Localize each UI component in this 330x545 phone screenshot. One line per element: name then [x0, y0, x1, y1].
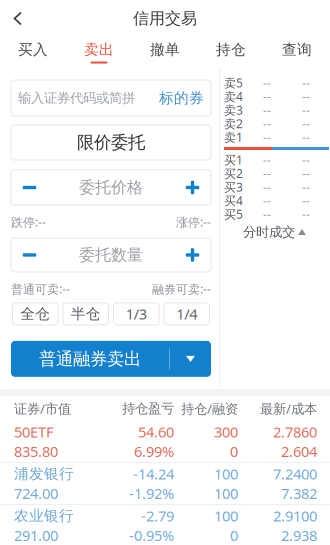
staticText: 标的券 [159, 89, 204, 107]
staticText: -- [263, 75, 271, 91]
button[interactable]: 1/4 [164, 303, 209, 325]
staticText: -- [302, 75, 310, 91]
staticText: -2.79 [141, 506, 174, 525]
staticText: 2.604 [281, 441, 317, 461]
staticText: 100 [214, 483, 238, 503]
staticText: 委托价格 [79, 178, 143, 197]
staticText: -14.24 [133, 464, 174, 483]
staticText: -- [302, 179, 310, 195]
button[interactable]: Back [0, 1, 36, 35]
staticText: 买入 [18, 40, 48, 58]
button[interactable]: 限价委托 [11, 125, 211, 160]
staticText: 54.60 [138, 422, 174, 441]
staticText: 跌停:-- [11, 214, 46, 230]
staticText: -- [263, 116, 271, 131]
button[interactable]: 1/3 [113, 303, 159, 325]
staticText: 涨停:-- [176, 214, 211, 230]
staticText: -- [263, 88, 271, 104]
staticText: 普通可卖:-- [11, 281, 70, 297]
staticText: 限价委托 [77, 132, 145, 153]
staticText: 查询 [282, 40, 312, 58]
staticText: -- [302, 102, 310, 118]
staticText: 买2 [224, 165, 243, 181]
staticText: 1/3 [126, 304, 147, 324]
staticText: 买5 [224, 206, 243, 222]
staticText: 买4 [224, 193, 243, 208]
staticText: 0 [230, 441, 238, 461]
staticText: -- [302, 88, 310, 104]
button[interactable]: 撤单 [132, 37, 198, 67]
staticText: 普通融券卖出 [39, 348, 141, 369]
staticText: 融券可卖:-- [152, 281, 211, 297]
staticText: 6.99% [134, 441, 174, 461]
staticText: 2.9100 [273, 506, 317, 525]
staticText: -- [302, 165, 310, 181]
staticText: -- [302, 129, 310, 145]
staticText: 撤单 [150, 40, 180, 58]
staticText: 724.00 [14, 483, 58, 503]
button[interactable]: 50ETF [0, 421, 317, 462]
staticText: 半仓 [71, 305, 101, 323]
staticText: -- [302, 116, 310, 131]
staticText: 卖4 [224, 88, 243, 104]
button[interactable]: Increase [174, 170, 211, 205]
staticText: 证券/市值 [14, 400, 71, 417]
staticText: -- [263, 193, 271, 208]
button[interactable]: 半仓 [63, 303, 108, 325]
staticText: 100 [214, 506, 238, 525]
staticText: 持仓 [216, 40, 246, 58]
staticText: -- [302, 206, 310, 222]
staticText: 卖出 [84, 40, 114, 58]
staticText: 291.00 [14, 525, 58, 545]
staticText: 全仓 [20, 305, 50, 323]
staticText: 农业银行 [14, 507, 74, 525]
staticText: 卖5 [224, 75, 243, 91]
button[interactable]: 分时成交 [224, 221, 325, 243]
staticText: 买1 [224, 152, 243, 168]
staticText: -- [302, 193, 310, 208]
staticText: -0.95% [129, 525, 174, 545]
staticText: -- [263, 179, 271, 195]
button[interactable]: 卖出 [66, 37, 132, 67]
staticText: 50ETF [14, 422, 54, 441]
staticText: 2.7860 [273, 422, 317, 441]
staticText: 委托数量 [79, 245, 143, 265]
staticText: 835.80 [14, 441, 58, 461]
button[interactable]: Decrease [11, 170, 48, 205]
staticText: 持仓盈亏 [122, 400, 174, 417]
staticText: -- [263, 165, 271, 181]
staticText: 300 [214, 422, 238, 441]
staticText: 卖1 [224, 129, 243, 145]
staticText: 信用交易 [133, 9, 197, 28]
button[interactable]: Decrease [11, 238, 48, 272]
button[interactable]: 查询 [264, 37, 330, 67]
staticText: 0 [230, 525, 238, 545]
staticText: 100 [214, 464, 238, 483]
button[interactable]: 普通融券卖出 [11, 341, 169, 377]
staticText: 7.382 [281, 483, 317, 503]
staticText: 买3 [224, 179, 243, 195]
button[interactable]: 浦发银行 [0, 463, 317, 504]
button[interactable]: 买入 [0, 37, 66, 67]
staticText: 7.2400 [273, 464, 317, 483]
staticText: 最新/成本 [260, 400, 317, 417]
staticText: -- [263, 206, 271, 222]
staticText: 持仓/融资 [181, 400, 238, 417]
staticText: 1/4 [176, 304, 197, 324]
staticText: 卖3 [224, 102, 243, 118]
staticText: -- [263, 102, 271, 118]
button[interactable]: Increase [174, 238, 211, 272]
button[interactable]: 持仓 [198, 37, 264, 67]
staticText: 2.938 [281, 525, 317, 545]
staticText: 输入证券代码或简拼 [18, 90, 135, 106]
staticText: -- [263, 152, 271, 168]
button[interactable]: 全仓 [12, 303, 58, 325]
staticText: 浦发银行 [14, 465, 74, 483]
staticText: 分时成交 [243, 224, 295, 240]
staticText: -- [302, 152, 310, 168]
button[interactable]: 农业银行 [0, 505, 317, 545]
staticText: 卖2 [224, 116, 243, 131]
staticText: -- [263, 129, 271, 145]
staticText: -1.92% [129, 483, 174, 503]
button[interactable]: More order types [170, 341, 211, 377]
